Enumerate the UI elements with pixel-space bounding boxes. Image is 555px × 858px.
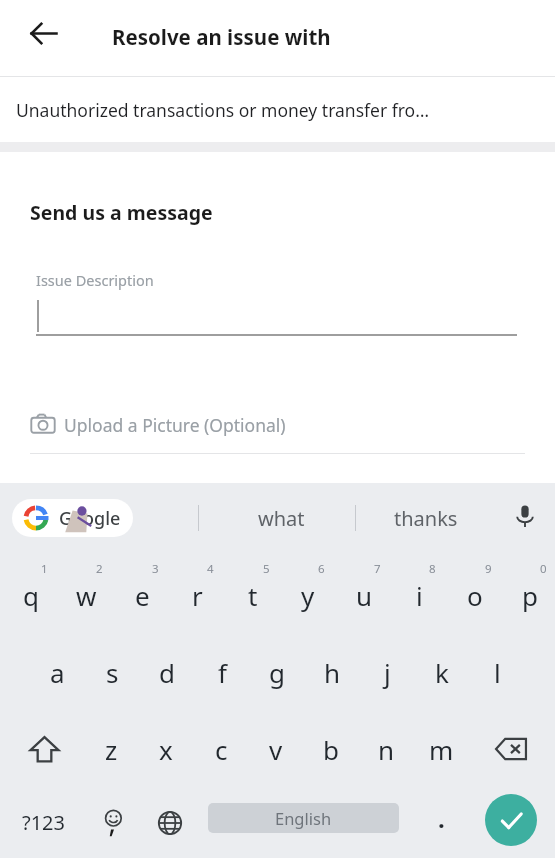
button[interactable]: ?123 (6, 787, 80, 858)
staticText: ?123 (22, 809, 65, 836)
button[interactable]: x (139, 711, 193, 787)
staticText: r (192, 578, 203, 613)
staticText: 7 (374, 561, 381, 577)
button[interactable]: Send (485, 794, 537, 846)
button[interactable]: d (140, 634, 194, 711)
button[interactable]: Shift (14, 711, 74, 787)
staticText: 6 (318, 561, 325, 577)
button[interactable]: t (226, 551, 280, 634)
button[interactable]: r (170, 551, 224, 634)
button[interactable]: Unauthorized transactions or money trans… (0, 77, 555, 142)
button[interactable]: Back (20, 10, 66, 56)
button[interactable]: c (194, 711, 248, 787)
button[interactable]: u (337, 551, 391, 634)
staticText: t (248, 578, 258, 613)
staticText: 2 (96, 561, 103, 577)
staticText: x (159, 732, 173, 767)
staticText: l (494, 655, 501, 690)
button[interactable]: a (30, 634, 84, 711)
staticText: e (135, 578, 150, 613)
staticText: i (416, 578, 423, 613)
staticText: 3 (152, 561, 159, 577)
staticText: b (323, 732, 339, 767)
button[interactable]: q (4, 551, 58, 634)
button[interactable]: Emoji (86, 787, 142, 858)
button[interactable]: b (304, 711, 358, 787)
button[interactable]: Upload a Picture (Optional) (30, 405, 286, 445)
button[interactable]: thanks (362, 493, 490, 543)
staticText: u (356, 578, 373, 613)
staticText: h (324, 655, 341, 690)
button[interactable]: what (206, 493, 356, 543)
button[interactable]: z (84, 711, 138, 787)
button[interactable]: m (414, 711, 468, 787)
button[interactable]: l (470, 634, 524, 711)
staticText: English (275, 807, 332, 829)
staticText: Unauthorized transactions or money trans… (16, 98, 430, 122)
staticText: 1 (41, 561, 48, 577)
button[interactable]: Change language (142, 787, 198, 858)
staticText: 5 (263, 561, 270, 577)
staticText: 8 (429, 561, 436, 577)
staticText: w (76, 578, 97, 613)
staticText: 4 (207, 561, 214, 577)
staticText: k (435, 655, 449, 690)
staticText: z (105, 732, 118, 767)
button[interactable]: English (208, 803, 399, 833)
button[interactable]: Google (12, 499, 133, 537)
staticText: Resolve an issue with (112, 23, 331, 51)
staticText: q (23, 578, 39, 613)
staticText: Google (59, 506, 121, 531)
button[interactable]: k (415, 634, 469, 711)
button[interactable]: g (250, 634, 304, 711)
button[interactable]: j (360, 634, 414, 711)
staticText: p (522, 578, 538, 613)
staticText: a (50, 655, 65, 690)
staticText: what (258, 505, 305, 532)
staticText: 9 (485, 561, 492, 577)
button[interactable]: e (115, 551, 169, 634)
button[interactable]: . (415, 787, 467, 858)
staticText: Issue Description (36, 270, 154, 290)
staticText: f (218, 655, 227, 690)
staticText: Send us a message (30, 199, 213, 226)
staticText: n (378, 732, 395, 767)
staticText: o (467, 578, 483, 613)
button[interactable]: n (359, 711, 413, 787)
staticText: m (429, 732, 454, 767)
staticText: v (269, 732, 283, 767)
button[interactable]: Voice input (502, 493, 548, 539)
button[interactable]: p (503, 551, 555, 634)
button[interactable]: s (85, 634, 139, 711)
staticText: 0 (540, 561, 547, 577)
button[interactable]: v (249, 711, 303, 787)
button[interactable]: y (281, 551, 335, 634)
staticText: s (106, 655, 119, 690)
button[interactable]: w (59, 551, 113, 634)
button[interactable]: Backspace (481, 711, 541, 787)
staticText: y (301, 578, 315, 613)
staticText: Upload a Picture (Optional) (64, 413, 286, 437)
staticText: j (384, 655, 391, 690)
button[interactable]: o (448, 551, 502, 634)
staticText: thanks (394, 505, 458, 532)
button[interactable]: f (195, 634, 249, 711)
staticText: c (215, 732, 228, 767)
button[interactable]: i (392, 551, 446, 634)
button[interactable]: h (305, 634, 359, 711)
staticText: g (269, 655, 285, 690)
staticText: . (438, 802, 445, 835)
staticText: d (159, 655, 175, 690)
